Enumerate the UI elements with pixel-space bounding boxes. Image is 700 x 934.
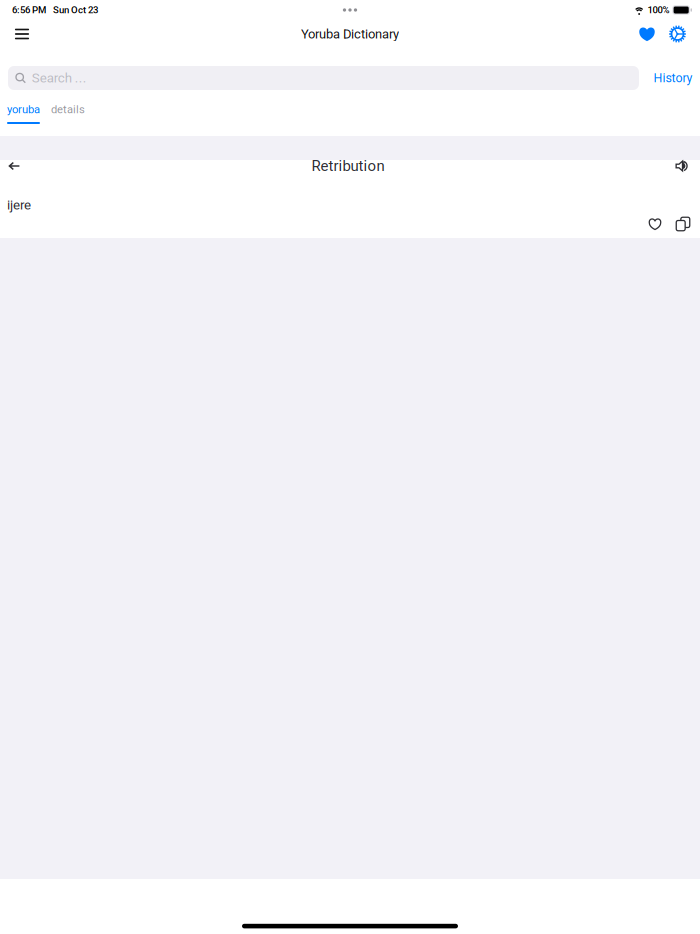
button[interactable]: Settings (662, 20, 693, 48)
staticText: ijere (7, 197, 31, 213)
button[interactable]: details (51, 103, 85, 124)
staticText: details (51, 103, 85, 116)
staticText: Retribution (311, 157, 384, 175)
button[interactable]: yoruba (7, 103, 40, 124)
button[interactable]: History (647, 66, 698, 90)
staticText: Search ... (32, 70, 87, 86)
button[interactable]: Copy (671, 214, 695, 234)
staticText: Sun Oct 23 (53, 4, 98, 16)
button[interactable]: Favorite (643, 214, 667, 234)
button[interactable]: Pronounce (668, 156, 696, 176)
staticText: 100% (647, 4, 669, 16)
button[interactable]: Favorites (632, 20, 662, 48)
button[interactable]: Menu (4, 20, 40, 48)
staticText: Yoruba Dictionary (301, 26, 399, 42)
button[interactable]: Back (0, 156, 28, 176)
staticText: 6:56 PM (12, 4, 46, 16)
staticText: History (653, 71, 692, 85)
staticText: yoruba (7, 103, 40, 116)
